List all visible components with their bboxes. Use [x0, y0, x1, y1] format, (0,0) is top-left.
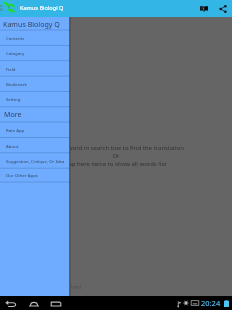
button[interactable]: Our Other Apps: [0, 168, 70, 182]
staticText: Bookmark: [6, 81, 27, 87]
staticText: Attached: [56, 283, 82, 291]
staticText: Kamus Biologi Q: [20, 4, 64, 12]
button[interactable]: Dictionary: [196, 0, 212, 17]
staticText: Tap here twice to show all words list: [0, 160, 232, 168]
staticText: Type a word in search box to find the tr…: [0, 144, 232, 152]
button[interactable]: Recents: [48, 296, 64, 310]
staticText: Or: [0, 152, 232, 160]
staticText: 20:24: [201, 298, 221, 308]
button[interactable]: Suggestion, Critique, Or Idea: [0, 153, 70, 168]
staticText: Setting: [6, 96, 21, 102]
staticText: Suggestion, Critique, Or Idea: [6, 158, 65, 164]
staticText: Kamus Biology Q: [3, 19, 60, 29]
button[interactable]: Home: [26, 296, 42, 310]
button[interactable]: Setting: [0, 91, 70, 106]
staticText: Contents: [6, 35, 25, 41]
staticText: Category: [6, 50, 25, 56]
staticText: Rate App: [6, 127, 25, 133]
button[interactable]: Contents: [0, 30, 70, 45]
button[interactable]: About: [0, 138, 70, 153]
button[interactable]: Back: [3, 296, 19, 310]
staticText: More: [4, 109, 22, 119]
staticText: Our Other Apps: [6, 172, 38, 178]
button[interactable]: Share: [215, 0, 231, 17]
button[interactable]: Field: [0, 61, 70, 76]
button[interactable]: Bookmark: [0, 76, 70, 91]
button[interactable]: Category: [0, 45, 70, 60]
button[interactable]: Rate App: [0, 122, 70, 137]
staticText: About: [6, 143, 19, 149]
staticText: Field: [6, 66, 16, 72]
